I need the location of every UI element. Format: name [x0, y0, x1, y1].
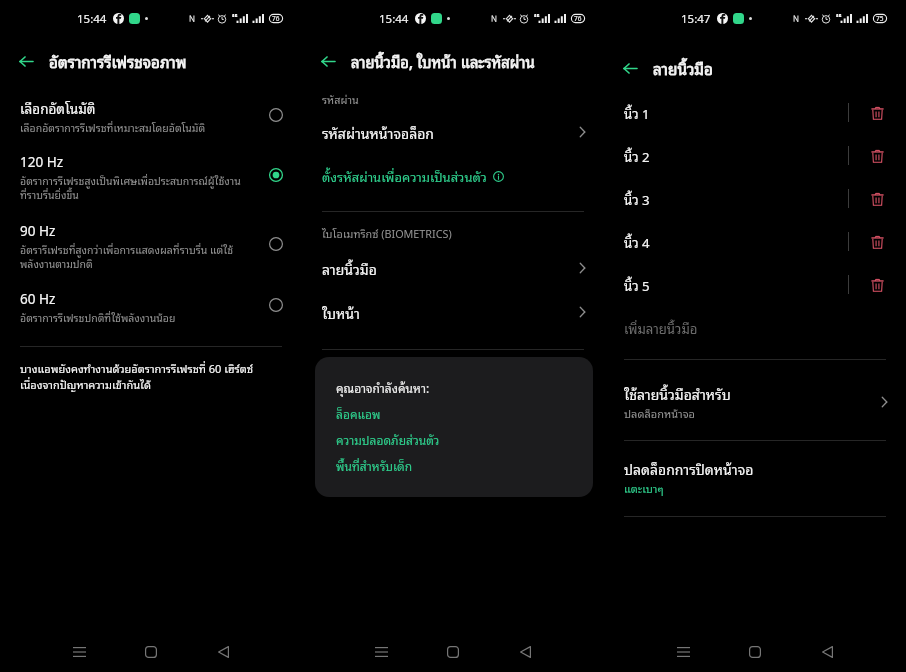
button[interactable]: Delete fingerprint	[868, 190, 886, 208]
staticText: ลายนิ้วมือ	[322, 257, 377, 279]
staticText: อัตราการรีเฟรชสูงเป็นพิเศษเพื่อประสบการณ…	[20, 172, 257, 203]
button[interactable]: นิ้ว 4	[604, 231, 906, 252]
staticText: นิ้ว 5	[624, 274, 650, 295]
button[interactable]: Recent apps	[647, 632, 719, 672]
staticText: เลือกอัตโนมัติ	[20, 97, 96, 119]
staticText: นิ้ว 3	[624, 188, 650, 209]
button[interactable]: ใช้ลายนิ้วมือสำหรับ	[604, 382, 906, 422]
button[interactable]: 90 Hz	[0, 219, 302, 272]
staticText: 90 Hz	[20, 219, 56, 241]
staticText: ลายนิ้วมือ	[653, 56, 713, 80]
staticText: 76	[272, 13, 280, 23]
staticText: เพิ่มลายนิ้วมือ	[624, 317, 698, 338]
staticText: 15:44	[379, 9, 409, 27]
button[interactable]: Delete fingerprint	[868, 147, 886, 165]
staticText: ปลดล็อกการปิดหน้าจอ	[624, 457, 754, 479]
button[interactable]: Back	[316, 49, 340, 73]
button[interactable]: คุณอาจกำลังค้นหา:	[315, 357, 593, 497]
button[interactable]: Back	[14, 49, 38, 73]
staticText: อัตรารีเฟรชที่สูงกว่าเพื่อการแสดงผลที่รา…	[20, 241, 257, 272]
staticText: รหัสผ่าน	[322, 90, 359, 107]
staticText: ไบโอเมทริกซ์ (BIOMETRICS)	[322, 224, 452, 241]
button[interactable]: 60 Hz	[0, 287, 302, 326]
staticText: นิ้ว 2	[624, 145, 650, 166]
staticText: 60 Hz	[20, 287, 56, 309]
staticText: บางแอพยังคงทำงานด้วยอัตราการรีเฟรชที่ 60…	[20, 359, 282, 392]
button[interactable]: Back	[791, 632, 863, 672]
button[interactable]: Delete fingerprint	[868, 233, 886, 251]
button[interactable]: รหัสผ่านหน้าจอล็อก	[302, 121, 604, 143]
staticText: ปลดล็อกหน้าจอ	[624, 404, 696, 422]
button[interactable]: เลือกอัตโนมัติ	[0, 97, 302, 136]
staticText: อัตราการรีเฟรชจอภาพ	[49, 49, 187, 73]
button[interactable]: Home	[719, 632, 791, 672]
staticText: ลายนิ้วมือ, ใบหน้า และรหัสผ่าน	[351, 49, 535, 73]
staticText: นิ้ว 1	[624, 102, 650, 123]
button[interactable]: นิ้ว 1	[604, 102, 906, 123]
button[interactable]: Recent apps	[43, 632, 115, 672]
button[interactable]: Back	[187, 632, 259, 672]
staticText: 15:44	[77, 9, 107, 27]
button[interactable]: ใบหน้า	[302, 301, 604, 323]
staticText: พื้นที่สำหรับเด็ก	[336, 456, 413, 475]
staticText: คุณอาจกำลังค้นหา:	[336, 378, 430, 397]
button[interactable]: Home	[115, 632, 187, 672]
button[interactable]: นิ้ว 2	[604, 145, 906, 166]
staticText: รหัสผ่านหน้าจอล็อก	[322, 121, 434, 143]
button[interactable]: Recent apps	[345, 632, 417, 672]
button[interactable]: 120 Hz	[0, 150, 302, 203]
staticText: ใบหน้า	[322, 301, 360, 323]
staticText: แตะเบาๆ	[624, 479, 664, 497]
button[interactable]: Delete fingerprint	[868, 276, 886, 294]
button[interactable]: นิ้ว 5	[604, 274, 906, 295]
button[interactable]: ปลดล็อกการปิดหน้าจอ	[604, 457, 906, 497]
button[interactable]: นิ้ว 3	[604, 188, 906, 209]
staticText: ความปลอดภัยส่วนตัว	[336, 430, 440, 449]
button[interactable]: Home	[417, 632, 489, 672]
staticText: 76	[574, 13, 582, 23]
button[interactable]: ตั้งรหัสผ่านเพื่อความเป็นส่วนตัว	[302, 166, 604, 187]
staticText: นิ้ว 4	[624, 231, 650, 252]
staticText: 120 Hz	[20, 150, 64, 172]
staticText: ล็อคแอพ	[336, 404, 381, 423]
staticText: ตั้งรหัสผ่านเพื่อความเป็นส่วนตัว	[322, 166, 487, 187]
button[interactable]: Back	[618, 56, 642, 80]
staticText: 15:47	[681, 9, 711, 27]
staticText: อัตราการรีเฟรชปกติที่ใช้พลังงานน้อย	[20, 309, 176, 326]
button[interactable]: Back	[489, 632, 561, 672]
button[interactable]: ลายนิ้วมือ	[302, 257, 604, 279]
staticText: 75	[876, 13, 884, 23]
staticText: เลือกอัตราการรีเฟรชที่เหมาะสมโดยอัตโนมัต…	[20, 119, 206, 136]
button[interactable]: Delete fingerprint	[868, 104, 886, 122]
staticText: ใช้ลายนิ้วมือสำหรับ	[624, 382, 731, 404]
